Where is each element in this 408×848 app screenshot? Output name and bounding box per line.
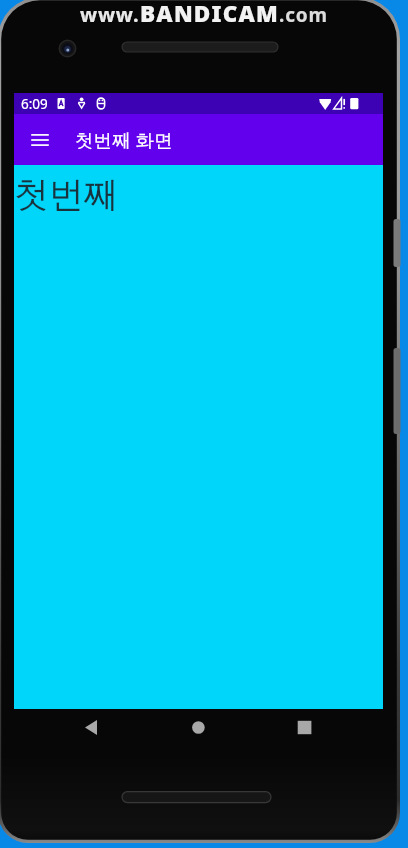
- button[interactable]: Open navigation menu: [24, 124, 56, 156]
- button[interactable]: Home: [183, 712, 215, 744]
- staticText: .com: [279, 2, 328, 28]
- staticText: 첫번째 화면: [75, 127, 173, 152]
- button[interactable]: Recent apps: [289, 712, 321, 744]
- staticText: www.: [80, 1, 140, 28]
- staticText: 첫번째: [14, 172, 119, 216]
- staticText: 6:09: [21, 95, 48, 113]
- button[interactable]: Back: [75, 712, 107, 744]
- staticText: BANDICAM: [140, 0, 279, 29]
